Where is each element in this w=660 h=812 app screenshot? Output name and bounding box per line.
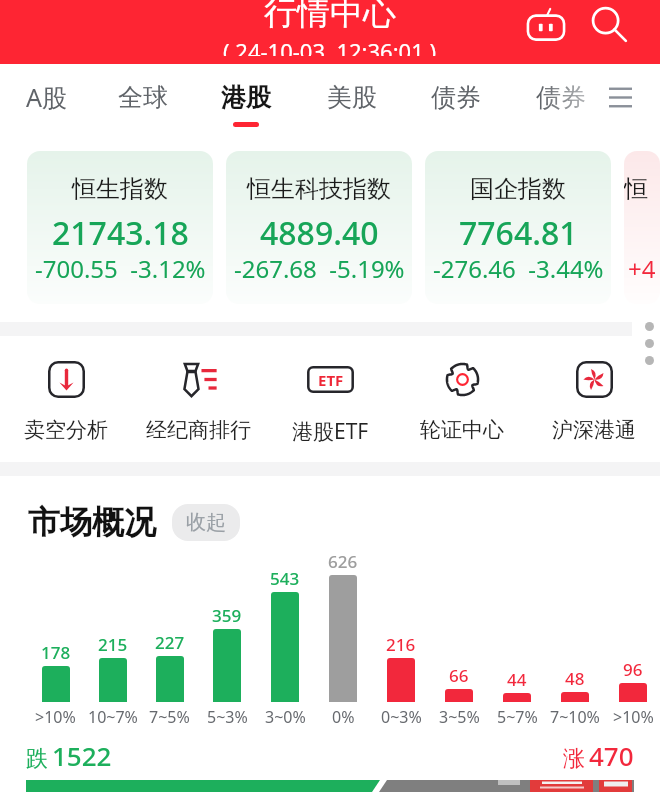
staticText: 66 xyxy=(449,664,469,687)
staticText: 全球 xyxy=(118,82,168,113)
staticText: -267.68 -5.19% xyxy=(234,252,405,285)
button[interactable]: 美股 xyxy=(302,64,402,140)
button[interactable]: ETF xyxy=(264,336,396,462)
staticText: 3~0% xyxy=(265,706,306,728)
staticText: 5~7% xyxy=(497,706,538,728)
staticText: 178 xyxy=(41,641,71,664)
button[interactable]: 恒生科技指数 xyxy=(226,151,412,304)
staticText: 卖空分析 xyxy=(24,417,108,443)
staticText: 48 xyxy=(565,667,585,690)
staticText: 0% xyxy=(332,706,355,728)
button[interactable]: 国企指数 xyxy=(425,151,611,304)
staticText: 收起 xyxy=(186,510,226,535)
staticText: 10~7% xyxy=(88,706,138,728)
button[interactable]: More indices xyxy=(632,304,660,382)
button[interactable]: More tabs xyxy=(598,75,642,119)
button[interactable]: 经纪商排行 xyxy=(132,336,264,462)
staticText: 3~5% xyxy=(439,706,480,728)
staticText: 216 xyxy=(386,633,416,656)
staticText: 1522 xyxy=(52,738,112,773)
staticText: 港股ETF xyxy=(292,417,369,446)
staticText: -700.55 -3.12% xyxy=(35,252,206,285)
staticText: ETF xyxy=(318,370,344,390)
staticText: 359 xyxy=(212,604,242,627)
staticText: 涨 xyxy=(563,745,585,773)
staticText: >10% xyxy=(613,706,654,728)
staticText: 国企指数 xyxy=(470,174,566,204)
staticText: 市场概况 xyxy=(28,502,156,542)
staticText: 44 xyxy=(507,668,527,691)
staticText: -276.46 -3.44% xyxy=(433,252,604,285)
button[interactable]: 恒生 xyxy=(624,151,660,304)
staticText: ( 24-10-03 12:36:01 ) xyxy=(223,36,437,56)
staticText: 215 xyxy=(98,633,128,656)
staticText: 7764.81 xyxy=(459,211,578,255)
button[interactable]: 卖空分析 xyxy=(0,336,132,462)
staticText: 跌 xyxy=(26,745,48,773)
staticText: 港股 xyxy=(221,82,271,113)
staticText: 轮证中心 xyxy=(420,417,504,443)
button[interactable]: 港股 xyxy=(196,64,296,140)
button[interactable]: 收起 xyxy=(172,504,240,541)
staticText: 5~3% xyxy=(207,706,248,728)
button[interactable]: 沪深港通 xyxy=(528,336,660,462)
staticText: 美股 xyxy=(327,82,377,113)
staticText: 4889.40 xyxy=(260,211,379,255)
staticText: 0~3% xyxy=(381,706,422,728)
staticText: 恒生科技指数 xyxy=(247,174,391,204)
staticText: +4 xyxy=(628,252,656,285)
button[interactable]: 债券 xyxy=(406,64,506,140)
staticText: A股 xyxy=(26,80,67,114)
staticText: 债券 xyxy=(536,82,586,113)
staticText: 行情中心 xyxy=(264,0,396,34)
button[interactable]: A股 xyxy=(0,64,96,140)
staticText: 经纪商排行 xyxy=(146,417,251,443)
staticText: 227 xyxy=(155,631,185,654)
button[interactable]: 轮证中心 xyxy=(396,336,528,462)
staticText: 21743.18 xyxy=(52,211,189,255)
staticText: 626 xyxy=(328,550,358,573)
button[interactable]: 全球 xyxy=(93,64,193,140)
staticText: 债券 xyxy=(431,82,481,113)
button[interactable]: Search xyxy=(586,1,634,49)
staticText: 7~10% xyxy=(550,706,600,728)
staticText: >10% xyxy=(35,706,76,728)
staticText: 96 xyxy=(623,658,643,681)
staticText: 恒生指数 xyxy=(72,174,168,204)
button[interactable]: 恒生指数 xyxy=(27,151,213,304)
button[interactable]: 债券 xyxy=(511,64,611,140)
staticText: 沪深港通 xyxy=(552,417,636,443)
staticText: 470 xyxy=(589,738,634,773)
staticText: 恒生 xyxy=(624,174,660,204)
button[interactable]: AI Assistant xyxy=(520,1,572,49)
staticText: 7~5% xyxy=(149,706,190,728)
staticText: 543 xyxy=(270,567,300,590)
